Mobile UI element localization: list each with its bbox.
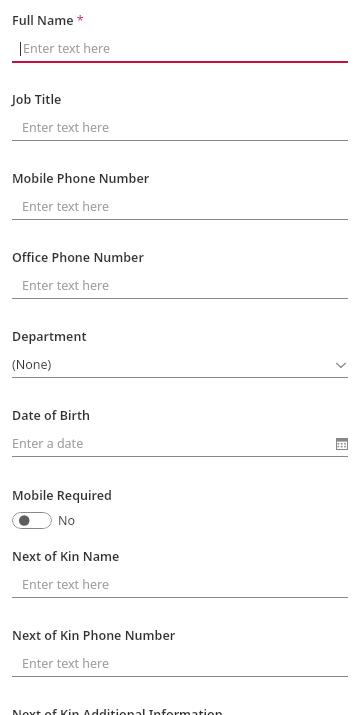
button[interactable]: (None)	[12, 356, 348, 373]
button[interactable]: Enter text here	[12, 277, 348, 294]
staticText: Next of Kin Name	[12, 548, 120, 565]
staticText: Office Phone Number	[12, 249, 144, 266]
staticText: Department	[12, 328, 87, 345]
other: Open dropdown	[334, 358, 348, 372]
staticText: Next of Kin Phone Number	[12, 627, 176, 644]
staticText: Enter text here	[22, 277, 110, 294]
button[interactable]: Enter a date	[12, 435, 348, 452]
staticText: No	[58, 512, 76, 529]
button[interactable]: Enter text here	[12, 655, 348, 672]
staticText: Mobile Phone Number	[12, 170, 150, 187]
button[interactable]: Enter text here	[12, 576, 348, 593]
staticText: Date of Birth	[12, 407, 90, 424]
staticText: Enter text here	[23, 40, 111, 57]
staticText: Enter text here	[22, 576, 110, 593]
staticText: Enter text here	[22, 119, 110, 136]
button[interactable]: Enter text here	[12, 198, 348, 215]
staticText: (None)	[12, 356, 52, 373]
staticText: Enter text here	[22, 655, 110, 672]
button[interactable]: No	[12, 512, 76, 529]
staticText: Full Name *	[12, 12, 84, 29]
button[interactable]: Enter text here	[12, 40, 348, 57]
staticText: Enter text here	[22, 198, 110, 215]
staticText: Job Title	[12, 91, 62, 108]
staticText: Enter a date	[12, 435, 84, 452]
staticText: Mobile Required	[12, 487, 112, 504]
other: Choose a date	[336, 438, 348, 450]
staticText: Next of Kin Additional Information	[12, 706, 223, 715]
button[interactable]: Enter text here	[12, 119, 348, 136]
